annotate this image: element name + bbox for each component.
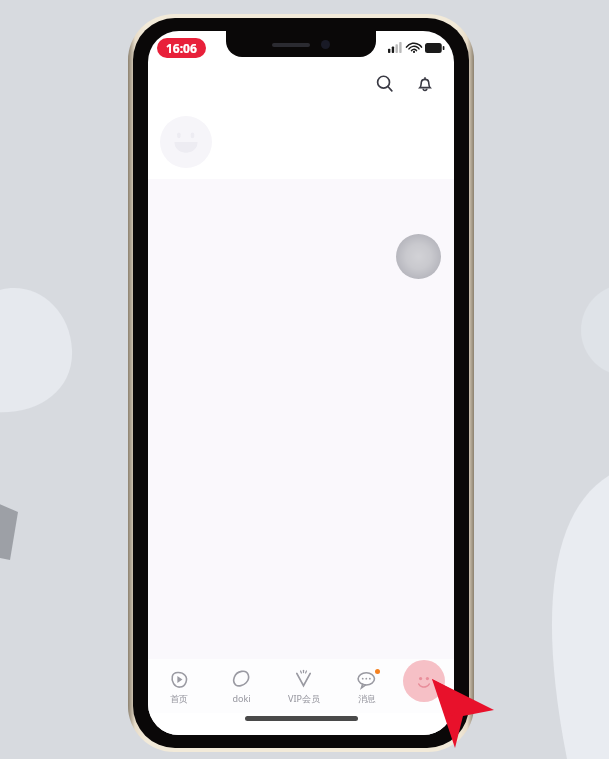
staticText: doki (232, 692, 251, 704)
button[interactable]: 消息 (335, 659, 398, 713)
staticText: 消息 (358, 693, 376, 704)
button[interactable]: 首页 (148, 659, 210, 713)
staticText: 16:06 (166, 40, 197, 56)
staticText: 首页 (170, 693, 188, 704)
staticText: VIP会员 (288, 692, 320, 704)
button[interactable]: Account (403, 660, 445, 702)
button[interactable]: VIP会员 (272, 659, 335, 713)
button[interactable]: doki (210, 659, 272, 713)
button[interactable]: Notifications (408, 67, 442, 101)
button[interactable]: Profile (160, 116, 212, 168)
button[interactable]: Search (368, 67, 402, 101)
button[interactable]: Floating action (396, 234, 441, 279)
